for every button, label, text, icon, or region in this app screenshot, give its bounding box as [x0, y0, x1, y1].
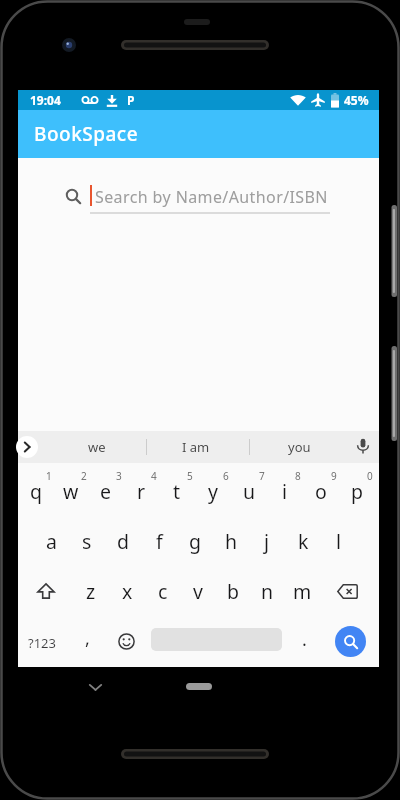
- button[interactable]: [18, 565, 73, 616]
- button[interactable]: [335, 626, 366, 657]
- staticText: a: [46, 528, 57, 555]
- staticText: w: [63, 478, 79, 505]
- button[interactable]: p: [339, 463, 375, 514]
- button[interactable]: t: [159, 463, 195, 514]
- staticText: n: [261, 578, 274, 605]
- button[interactable]: a: [34, 514, 69, 565]
- staticText: 3: [116, 469, 122, 483]
- staticText: g: [189, 528, 201, 555]
- staticText: r: [137, 478, 146, 505]
- staticText: s: [82, 528, 92, 555]
- staticText: we: [88, 438, 106, 456]
- staticText: m: [293, 578, 312, 605]
- button[interactable]: ,: [69, 616, 105, 667]
- button[interactable]: l: [321, 514, 357, 565]
- button[interactable]: [108, 616, 145, 667]
- button[interactable]: [16, 436, 38, 458]
- staticText: 1: [46, 469, 52, 483]
- staticText: c: [158, 578, 168, 605]
- button[interactable]: g: [177, 514, 213, 565]
- button[interactable]: [81, 673, 110, 701]
- button[interactable]: [65, 178, 330, 218]
- staticText: h: [225, 528, 238, 555]
- button[interactable]: you: [269, 431, 329, 463]
- button[interactable]: q: [18, 463, 53, 514]
- button[interactable]: s: [69, 514, 105, 565]
- staticText: 6: [223, 469, 229, 483]
- staticText: e: [100, 478, 111, 505]
- button[interactable]: I am: [165, 431, 226, 463]
- button[interactable]: d: [105, 514, 141, 565]
- staticText: z: [86, 578, 96, 605]
- staticText: ,: [85, 626, 90, 651]
- staticText: 45%: [344, 92, 369, 108]
- staticText: p: [351, 478, 363, 505]
- button[interactable]: ?123: [18, 616, 65, 667]
- staticText: o: [315, 478, 327, 505]
- staticText: b: [227, 578, 239, 605]
- button[interactable]: i: [267, 463, 303, 514]
- staticText: 8: [295, 469, 301, 483]
- staticText: ?123: [28, 634, 56, 652]
- button[interactable]: z: [73, 565, 109, 616]
- button[interactable]: [320, 565, 379, 616]
- staticText: 7: [259, 469, 265, 483]
- staticText: u: [243, 478, 256, 505]
- button[interactable]: k: [285, 514, 321, 565]
- staticText: I am: [182, 438, 210, 456]
- button[interactable]: u: [231, 463, 267, 514]
- staticText: 5: [187, 469, 193, 483]
- staticText: P: [127, 92, 135, 108]
- button[interactable]: y: [195, 463, 231, 514]
- staticText: you: [288, 438, 311, 456]
- staticText: j: [264, 528, 270, 555]
- button[interactable]: [186, 683, 212, 690]
- staticText: 0: [367, 469, 373, 483]
- staticText: k: [298, 528, 309, 555]
- staticText: Search by Name/Author/ISBN: [95, 186, 328, 208]
- staticText: 4: [151, 469, 157, 483]
- button[interactable]: [351, 435, 375, 459]
- staticText: q: [30, 478, 42, 505]
- staticText: 19:04: [30, 92, 61, 108]
- staticText: v: [193, 578, 203, 605]
- button[interactable]: m: [285, 565, 320, 616]
- button[interactable]: j: [249, 514, 285, 565]
- button[interactable]: o: [303, 463, 339, 514]
- button[interactable]: f: [141, 514, 177, 565]
- staticText: l: [336, 528, 342, 555]
- button[interactable]: v: [180, 565, 215, 616]
- button[interactable]: n: [250, 565, 285, 616]
- button[interactable]: h: [213, 514, 249, 565]
- staticText: x: [122, 578, 133, 605]
- staticText: f: [156, 528, 163, 555]
- button[interactable]: b: [215, 565, 250, 616]
- button[interactable]: e: [88, 463, 123, 514]
- button[interactable]: .: [286, 616, 322, 667]
- button[interactable]: x: [109, 565, 145, 616]
- button[interactable]: r: [123, 463, 159, 514]
- staticText: t: [173, 478, 181, 505]
- staticText: i: [282, 478, 288, 505]
- staticText: 9: [331, 469, 337, 483]
- staticText: .: [302, 627, 307, 652]
- button[interactable]: w: [53, 463, 88, 514]
- staticText: d: [117, 528, 129, 555]
- staticText: BookSpace: [34, 121, 139, 147]
- staticText: 2: [81, 469, 87, 483]
- button[interactable]: we: [67, 431, 127, 463]
- button[interactable]: c: [145, 565, 180, 616]
- staticText: y: [208, 478, 218, 505]
